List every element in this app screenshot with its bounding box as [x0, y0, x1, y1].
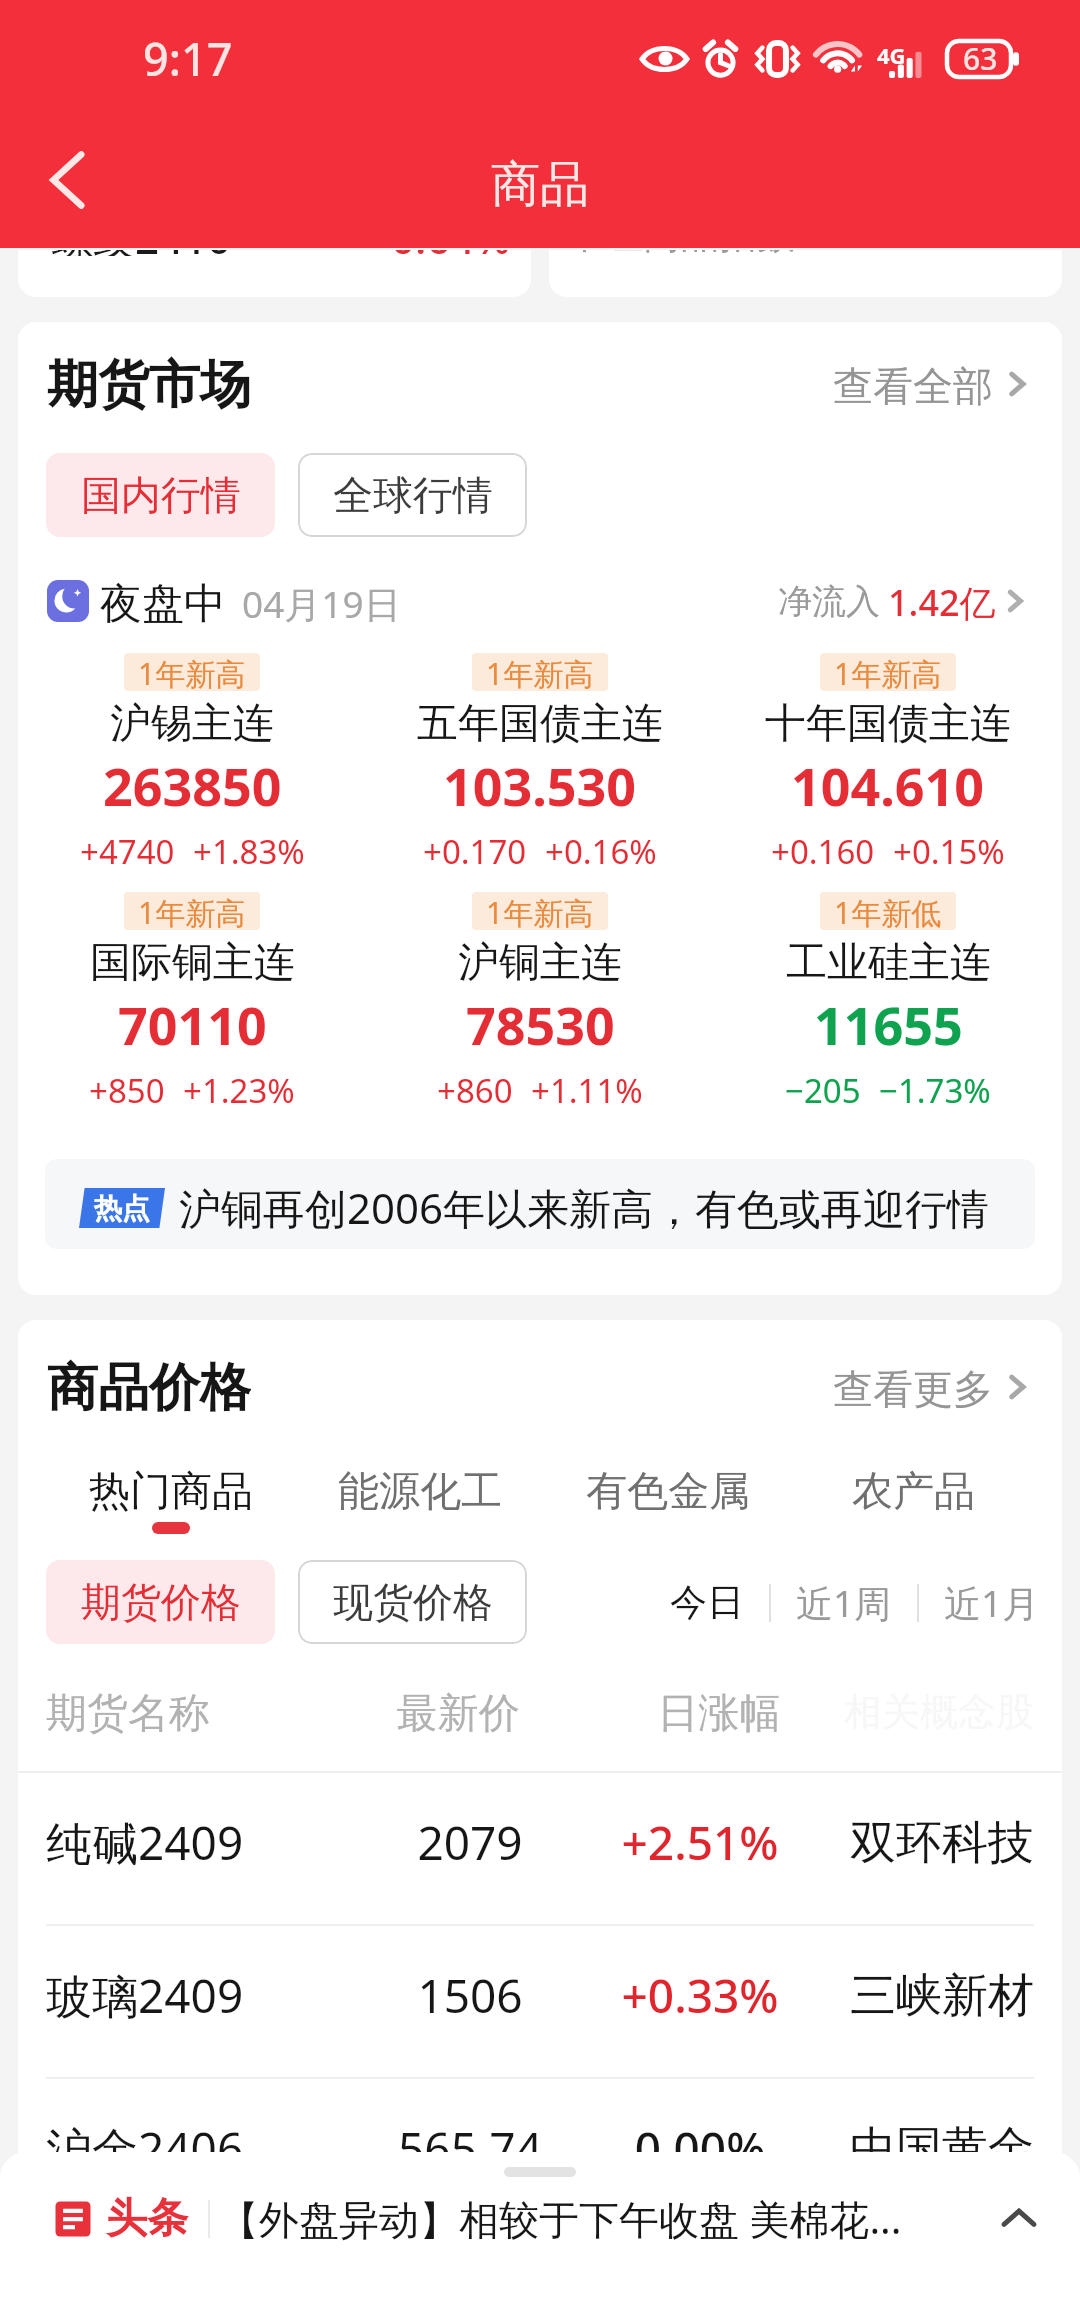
button[interactable]: 查看更多 — [833, 1356, 1036, 1418]
staticText: 双环科技 — [786, 1814, 1034, 1872]
staticText: +850 — [89, 1068, 165, 1113]
staticText: 期货名称 — [46, 1688, 314, 1740]
staticText: 9:17 — [143, 28, 233, 89]
staticText: 11655 — [814, 989, 963, 1060]
staticText: 70110 — [118, 989, 267, 1060]
button[interactable]: 期货价格 — [46, 1560, 275, 1644]
staticText: 中证商品指数 — [567, 250, 795, 258]
staticText: 沪锡主连 — [110, 698, 274, 750]
button[interactable]: 能源化工 — [338, 1466, 502, 1534]
button[interactable]: 近1周 — [796, 1577, 892, 1628]
button[interactable]: 现货价格 — [298, 1560, 527, 1644]
button[interactable]: Collapse — [992, 2192, 1046, 2246]
staticText: −1.73% — [879, 1068, 991, 1113]
button[interactable]: 净流入 — [778, 578, 1032, 624]
staticText: +1.83% — [193, 829, 305, 874]
staticText: 沪铜主连 — [458, 937, 622, 989]
staticText: 78530 — [466, 989, 615, 1060]
staticText: 1年新高 — [486, 653, 594, 691]
staticText: 十年国债主连 — [765, 698, 1011, 750]
staticText: 查看全部 — [833, 361, 993, 407]
staticText: +0.15% — [893, 829, 1005, 874]
staticText: 全球行情 — [333, 470, 493, 520]
button[interactable]: 近1月 — [944, 1577, 1040, 1628]
staticText: 工业硅主连 — [786, 937, 991, 989]
staticText: 1年新高 — [834, 653, 942, 691]
staticText: 热门商品 — [89, 1466, 253, 1518]
staticText: 【外盘异动】相较于下午收盘 美棉花... — [219, 2191, 902, 2246]
staticText: 04月19日 — [242, 578, 401, 624]
staticText: 商品 — [491, 154, 589, 216]
staticText: 沪铜再创2006年以来新高，有色或再迎行情 — [179, 1179, 990, 1236]
staticText: 1年新高 — [486, 892, 594, 930]
staticText: 104.610 — [791, 750, 985, 821]
staticText: 五年国债主连 — [417, 698, 663, 750]
staticText: 4G — [877, 40, 906, 70]
button[interactable]: 今日 — [670, 1579, 744, 1626]
button[interactable]: 纯碱2409 — [18, 1773, 1062, 1924]
staticText: 1506 — [326, 1964, 614, 2027]
button[interactable]: 1年新高 — [366, 892, 714, 1113]
button[interactable]: 1年新低 — [714, 892, 1062, 1113]
staticText: +1.11% — [531, 1068, 643, 1113]
staticText: 中国黄金 — [786, 2120, 1034, 2178]
staticText: 查看更多 — [833, 1364, 993, 1410]
staticText: 净流入 — [778, 580, 880, 623]
staticText: +0.33% — [614, 1964, 786, 2027]
staticText: 商品价格 — [47, 1356, 251, 1418]
staticText: 0.00% — [614, 2117, 786, 2180]
button[interactable]: 玻璃2409 — [18, 1926, 1062, 2077]
staticText: +1.23% — [183, 1068, 295, 1113]
staticText: 2079 — [326, 1811, 614, 1874]
staticText: 期货市场 — [47, 353, 251, 415]
staticText: 沪金2406 — [46, 2117, 326, 2180]
button[interactable]: 热点 — [45, 1159, 1035, 1249]
staticText: 1年新高 — [138, 653, 246, 691]
button[interactable]: 查看全部 — [833, 353, 1036, 415]
staticText: 期货价格 — [81, 1577, 241, 1627]
button[interactable]: 1年新高 — [18, 892, 366, 1113]
staticText: 1年新低 — [834, 892, 942, 930]
staticText: 103.530 — [443, 750, 637, 821]
staticText: 螺纹2410 — [51, 250, 232, 256]
button[interactable]: Back — [22, 135, 112, 225]
staticText: −205 — [785, 1068, 861, 1113]
staticText: 农产品 — [852, 1466, 975, 1518]
staticText: 头条 — [106, 2193, 188, 2245]
button[interactable]: 热门商品 — [89, 1466, 253, 1534]
staticText: 有色金属 — [586, 1466, 750, 1518]
staticText: +0.170 — [423, 829, 527, 874]
button[interactable]: 1年新高 — [18, 653, 366, 874]
button[interactable]: 全球行情 — [298, 453, 527, 537]
staticText: 最新价 — [314, 1688, 602, 1740]
button[interactable]: 国内行情 — [46, 453, 275, 537]
button[interactable]: 农产品 — [852, 1466, 975, 1534]
staticText: 263850 — [103, 750, 282, 821]
staticText: 相关概念股 — [836, 1688, 1034, 1736]
staticText: 1.42亿 — [888, 578, 996, 624]
staticText: +0.160 — [771, 829, 875, 874]
staticText: 热点 — [94, 1191, 150, 1226]
staticText: 1年新高 — [138, 892, 246, 930]
button[interactable]: 1年新高 — [366, 653, 714, 874]
staticText: +0.64% — [367, 250, 511, 256]
staticText: 三峡新材 — [786, 1967, 1034, 2025]
staticText: +2.51% — [614, 1811, 786, 1874]
staticText: 玻璃2409 — [46, 1964, 326, 2027]
staticText: 日涨幅 — [602, 1688, 836, 1740]
staticText: 565.74 — [326, 2117, 614, 2180]
staticText: +860 — [437, 1068, 513, 1113]
staticText: 国际铜主连 — [90, 937, 295, 989]
staticText: 纯碱2409 — [46, 1811, 326, 1874]
button[interactable]: 1年新高 — [714, 653, 1062, 874]
staticText: 现货价格 — [333, 1577, 493, 1627]
staticText: 国内行情 — [81, 470, 241, 520]
button[interactable]: 有色金属 — [586, 1466, 750, 1534]
staticText: +0.16% — [545, 829, 657, 874]
button[interactable]: 沪金2406 — [18, 2079, 1062, 2230]
staticText: 63 — [963, 38, 998, 79]
staticText: 夜盘中 — [100, 578, 226, 624]
staticText: 能源化工 — [338, 1466, 502, 1518]
staticText: +4740 — [80, 829, 175, 874]
